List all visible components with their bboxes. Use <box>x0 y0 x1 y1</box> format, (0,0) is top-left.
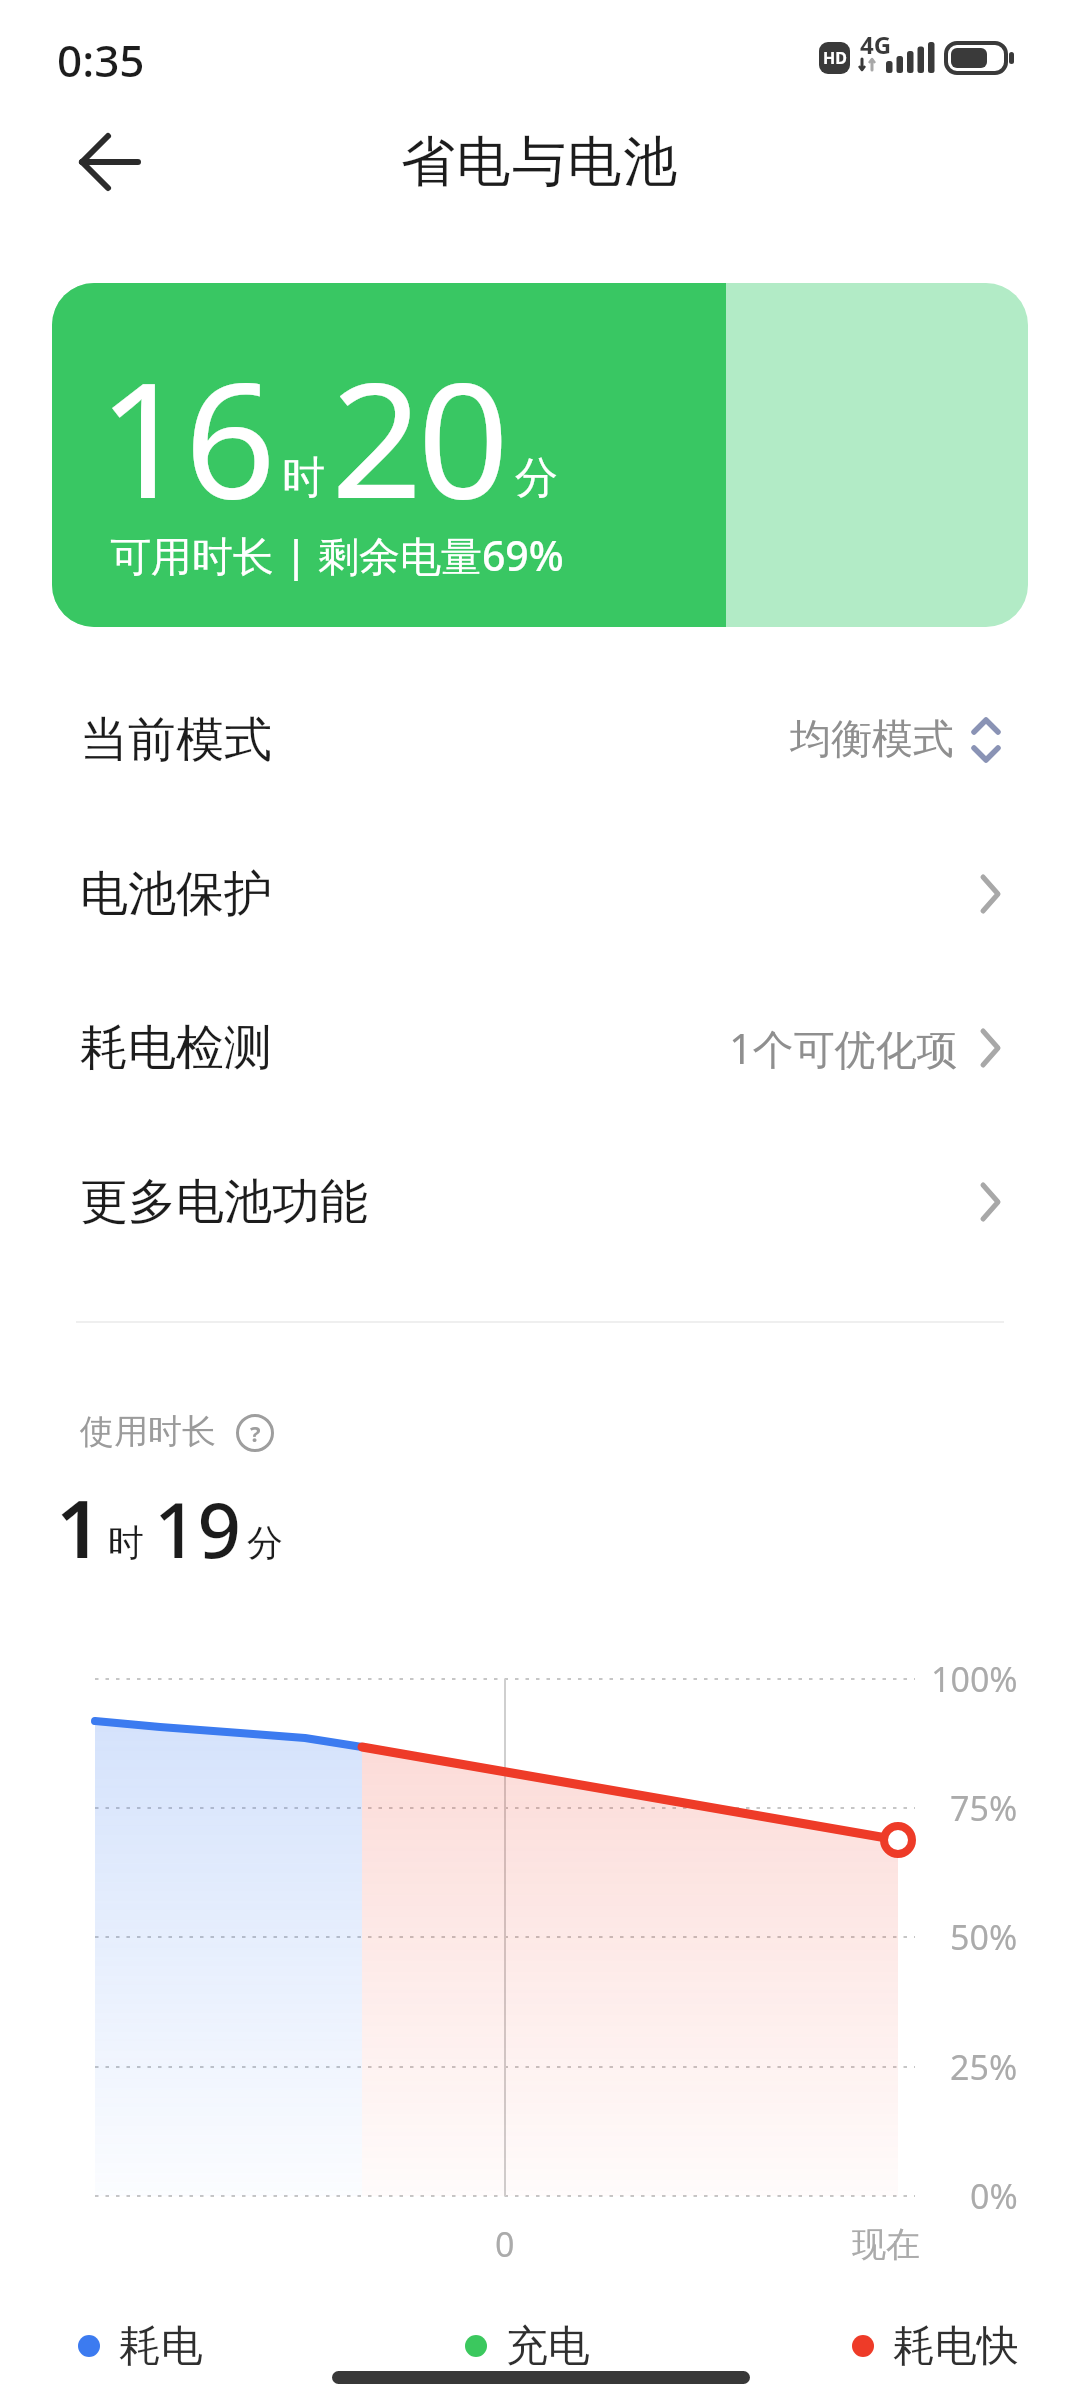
staticText: HD <box>823 47 847 69</box>
staticText: 分 <box>515 451 558 505</box>
staticText: 耗电检测 <box>80 1018 272 1078</box>
staticText: 75% <box>950 1785 1018 1831</box>
staticText: 使用时长 <box>80 1410 216 1453</box>
staticText: 时 <box>108 1520 144 1565</box>
button[interactable]: 耗电 <box>78 2318 203 2374</box>
staticText: 分 <box>247 1520 283 1565</box>
button[interactable]: 耗电快 <box>852 2318 1019 2374</box>
staticText: 可用时长 | 剩余电量69% <box>110 527 564 583</box>
button[interactable]: 当前模式 <box>0 663 1080 817</box>
staticText: 20 <box>331 327 505 545</box>
button[interactable]: 电池保护 <box>0 817 1080 971</box>
staticText: 耗电快 <box>893 2320 1019 2373</box>
staticText: 当前模式 <box>80 710 272 770</box>
staticText: 0 <box>495 2221 515 2267</box>
staticText: 均衡模式 <box>790 714 954 766</box>
staticText: 19 <box>154 1477 241 1581</box>
button[interactable]: 16 <box>52 283 1028 627</box>
staticText: 1 <box>56 1472 102 1581</box>
staticText: 充电 <box>506 2320 590 2373</box>
staticText: 现在 <box>852 2223 920 2266</box>
staticText: 50% <box>950 1914 1018 1960</box>
staticText: 耗电 <box>119 2320 203 2373</box>
staticText: 100% <box>931 1656 1018 1702</box>
staticText: 时 <box>282 451 325 505</box>
staticText: 更多电池功能 <box>80 1172 368 1232</box>
button[interactable]: 更多电池功能 <box>0 1125 1080 1279</box>
button[interactable] <box>60 126 160 198</box>
button[interactable]: 充电 <box>465 2318 590 2374</box>
staticText: 16 <box>98 327 272 545</box>
button[interactable]: ? <box>236 1414 274 1452</box>
staticText: 1个可优化项 <box>729 1020 958 1076</box>
staticText: 电池保护 <box>80 864 272 924</box>
staticText: 0:35 <box>57 30 145 80</box>
staticText: 25% <box>950 2044 1018 2090</box>
staticText: ? <box>250 1418 261 1448</box>
staticText: 省电与电池 <box>401 128 679 196</box>
staticText: 0% <box>970 2173 1018 2219</box>
button[interactable]: 耗电检测 <box>0 971 1080 1125</box>
staticText: 4G <box>860 28 892 60</box>
